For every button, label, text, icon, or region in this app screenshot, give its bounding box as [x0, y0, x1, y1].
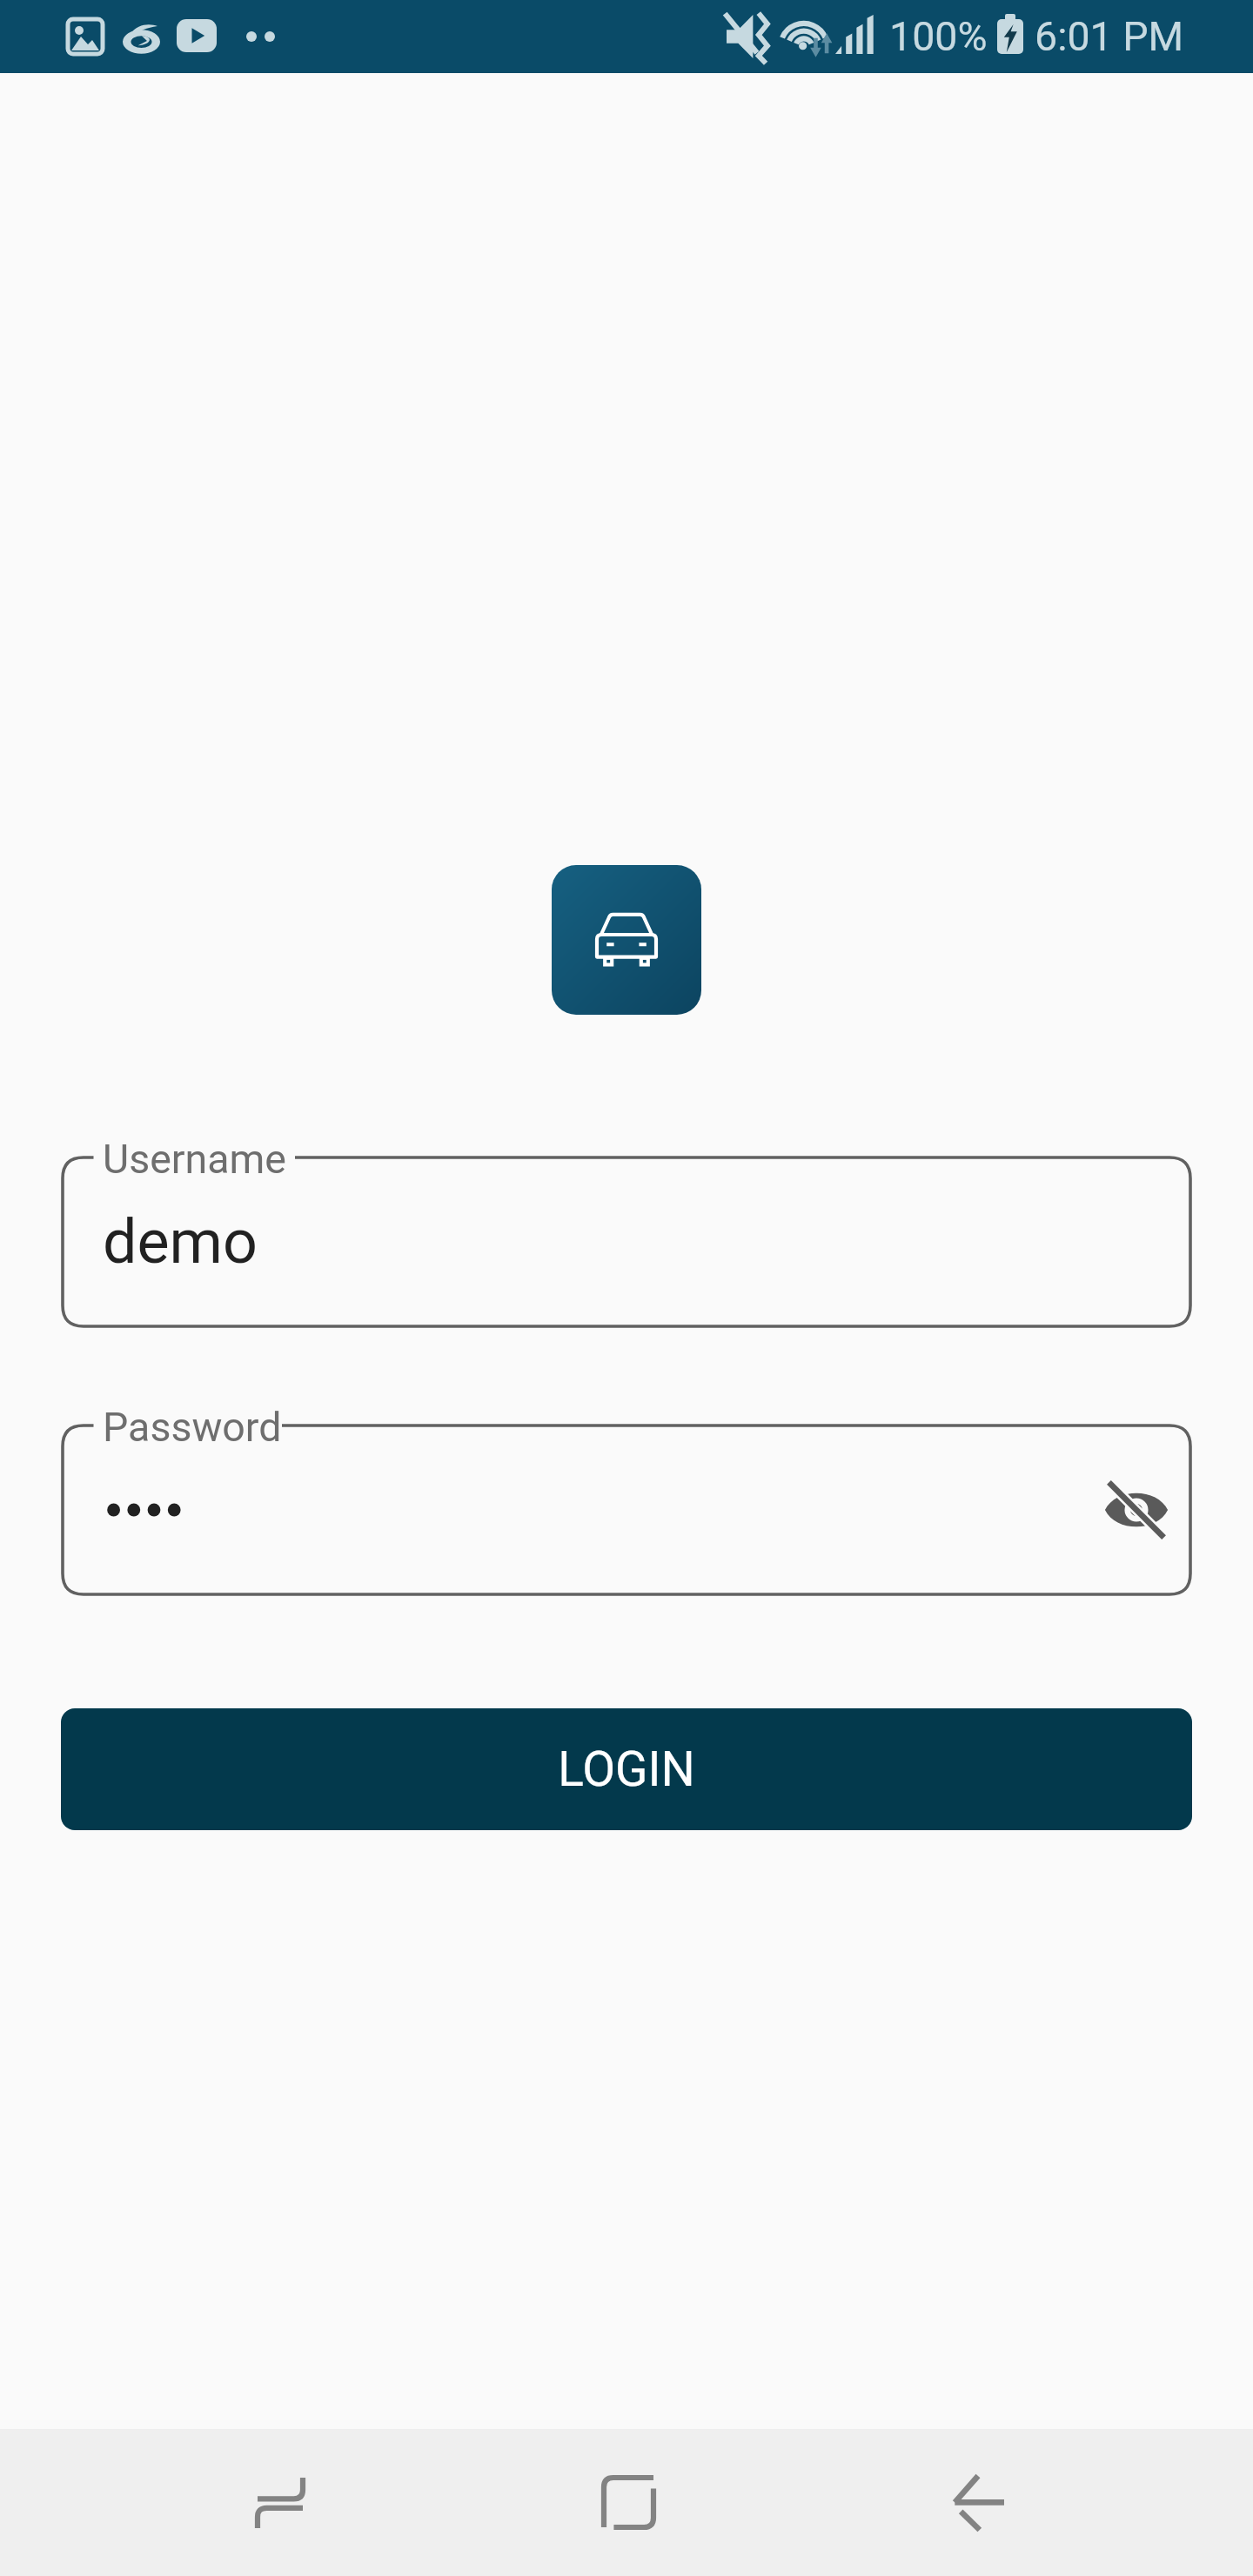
staticText: Username	[103, 1136, 286, 1183]
staticText: Password	[103, 1404, 282, 1451]
button[interactable]: Toggle password visibility	[1093, 1466, 1180, 1553]
button[interactable]: LOGIN	[61, 1708, 1192, 1830]
staticText: 100%	[889, 13, 988, 60]
staticText: demo	[103, 1206, 258, 1278]
button[interactable]: Recents	[105, 2429, 454, 2576]
staticText: LOGIN	[558, 1741, 695, 1797]
button[interactable]: Back	[803, 2429, 1152, 2576]
button[interactable]: Username	[63, 1157, 1190, 1326]
button[interactable]: Home	[454, 2429, 803, 2576]
button[interactable]: Password	[63, 1426, 1190, 1594]
staticText: 6:01 PM	[1035, 13, 1184, 60]
